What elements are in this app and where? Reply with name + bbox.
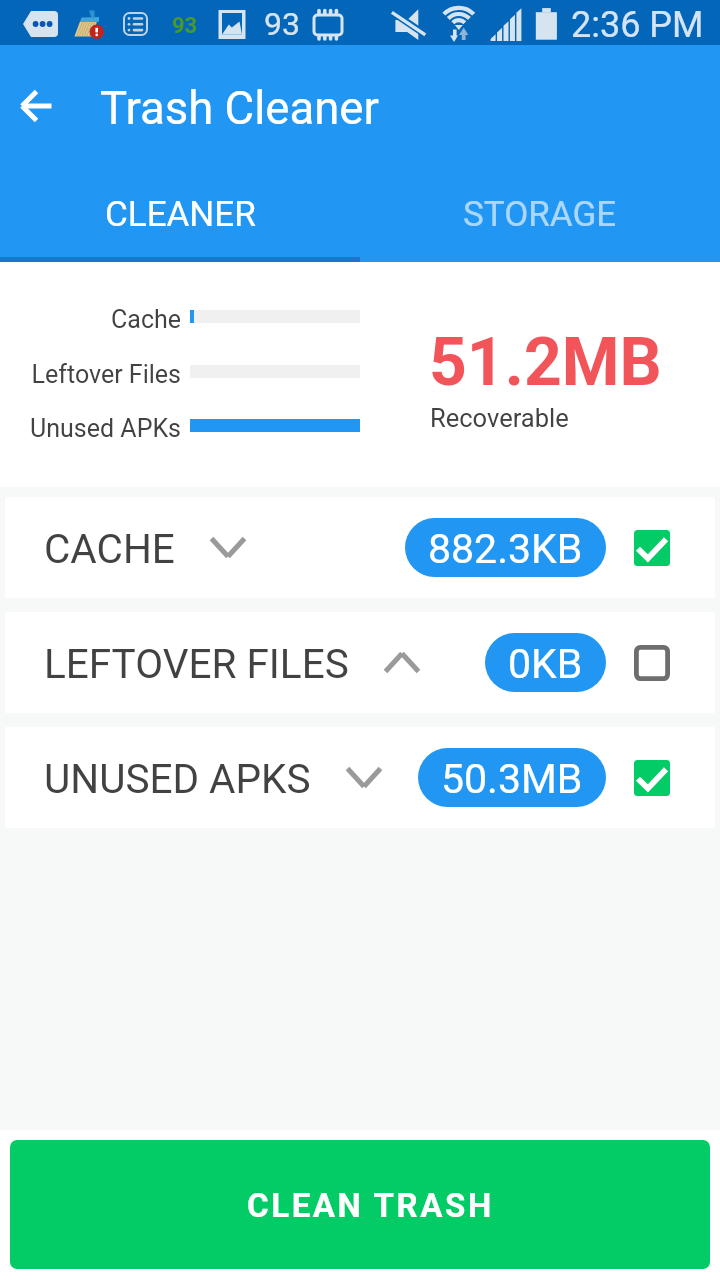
staticText: 51.2MB <box>429 324 662 401</box>
button[interactable]: CACHE <box>5 497 715 598</box>
button[interactable]: Back <box>16 84 60 128</box>
staticText: Leftover Files <box>0 360 181 389</box>
staticText: 93 <box>264 5 300 43</box>
staticText: STORAGE <box>463 194 617 235</box>
button[interactable]: STORAGE <box>360 165 720 262</box>
staticText: UNUSED APKS <box>44 755 311 802</box>
button[interactable]: Select LEFTOVER FILES <box>634 645 670 681</box>
button[interactable]: CLEANER <box>0 165 360 262</box>
staticText: 882.3KB <box>428 525 583 573</box>
button[interactable]: LEFTOVER FILES <box>5 612 715 713</box>
staticText: CLEANER <box>105 194 256 235</box>
staticText: CACHE <box>44 525 175 572</box>
staticText: Trash Cleaner <box>100 82 379 135</box>
button[interactable]: Select UNUSED APKS <box>634 760 670 796</box>
button[interactable]: Select CACHE <box>634 530 670 566</box>
staticText: Cache <box>0 305 181 334</box>
staticText: Unused APKs <box>0 414 181 443</box>
staticText: 93 <box>172 13 198 39</box>
staticText: Recoverable <box>430 403 569 433</box>
staticText: LEFTOVER FILES <box>44 640 349 687</box>
staticText: 2:36 PM <box>571 4 704 46</box>
staticText: 0KB <box>508 640 583 688</box>
button[interactable]: UNUSED APKS <box>5 727 715 828</box>
staticText: 50.3MB <box>441 755 583 803</box>
staticText: CLEAN TRASH <box>247 1186 494 1225</box>
button[interactable]: CLEAN TRASH <box>10 1140 710 1269</box>
